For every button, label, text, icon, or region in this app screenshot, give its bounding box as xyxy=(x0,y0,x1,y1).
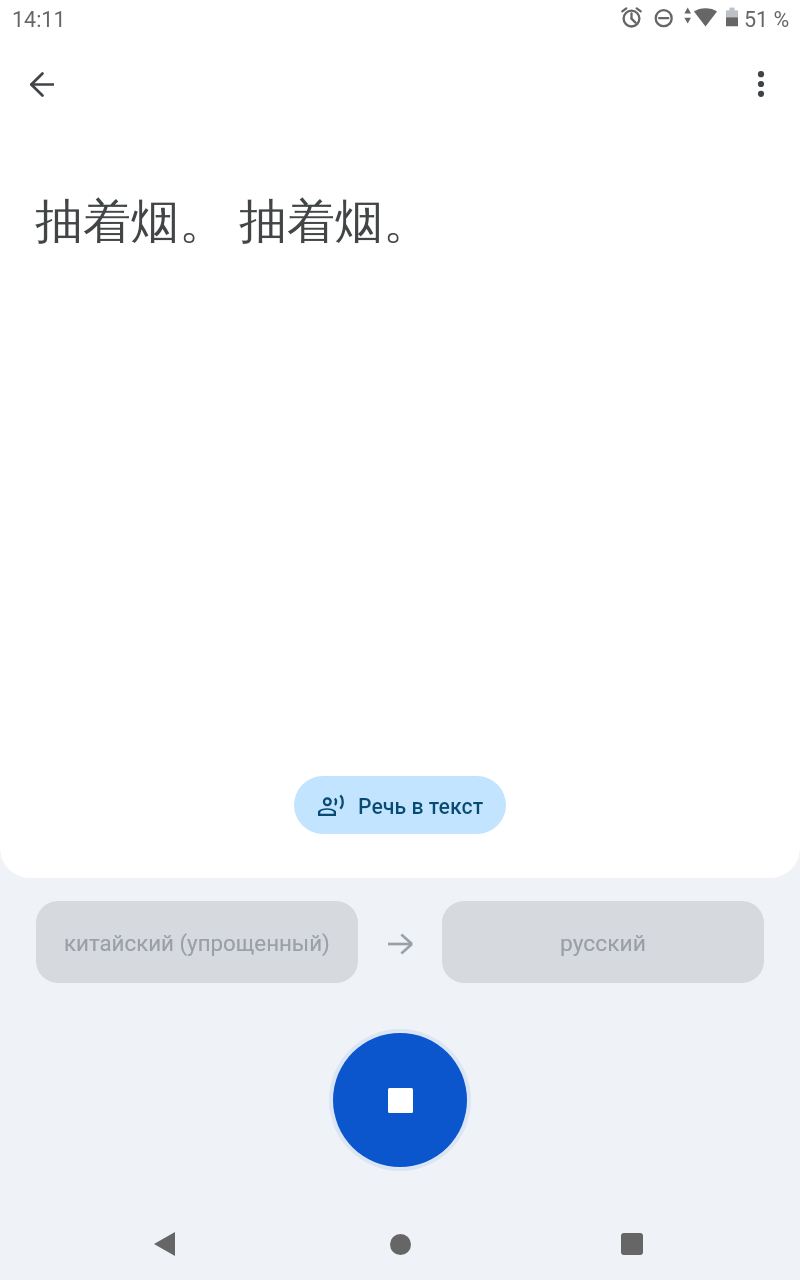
staticText: русский xyxy=(560,930,646,957)
staticText: 抽着烟。 抽着烟。 xyxy=(35,192,431,252)
button[interactable]: More options xyxy=(731,54,791,114)
button[interactable]: Home xyxy=(368,1212,432,1276)
button[interactable]: Back xyxy=(132,1212,196,1276)
button[interactable]: Back xyxy=(12,54,72,114)
staticText: китайский (упрощенный) xyxy=(64,930,330,956)
staticText: Речь в текст xyxy=(358,794,484,819)
staticText: 51 % xyxy=(744,7,790,32)
button[interactable]: русский xyxy=(442,901,764,983)
button[interactable]: Stop recording xyxy=(329,1029,471,1171)
staticText: 14:11 xyxy=(12,7,66,32)
button[interactable]: Речь в текст xyxy=(294,776,506,834)
button[interactable]: Recent apps xyxy=(600,1212,664,1276)
button[interactable]: китайский (упрощенный) xyxy=(36,901,358,983)
